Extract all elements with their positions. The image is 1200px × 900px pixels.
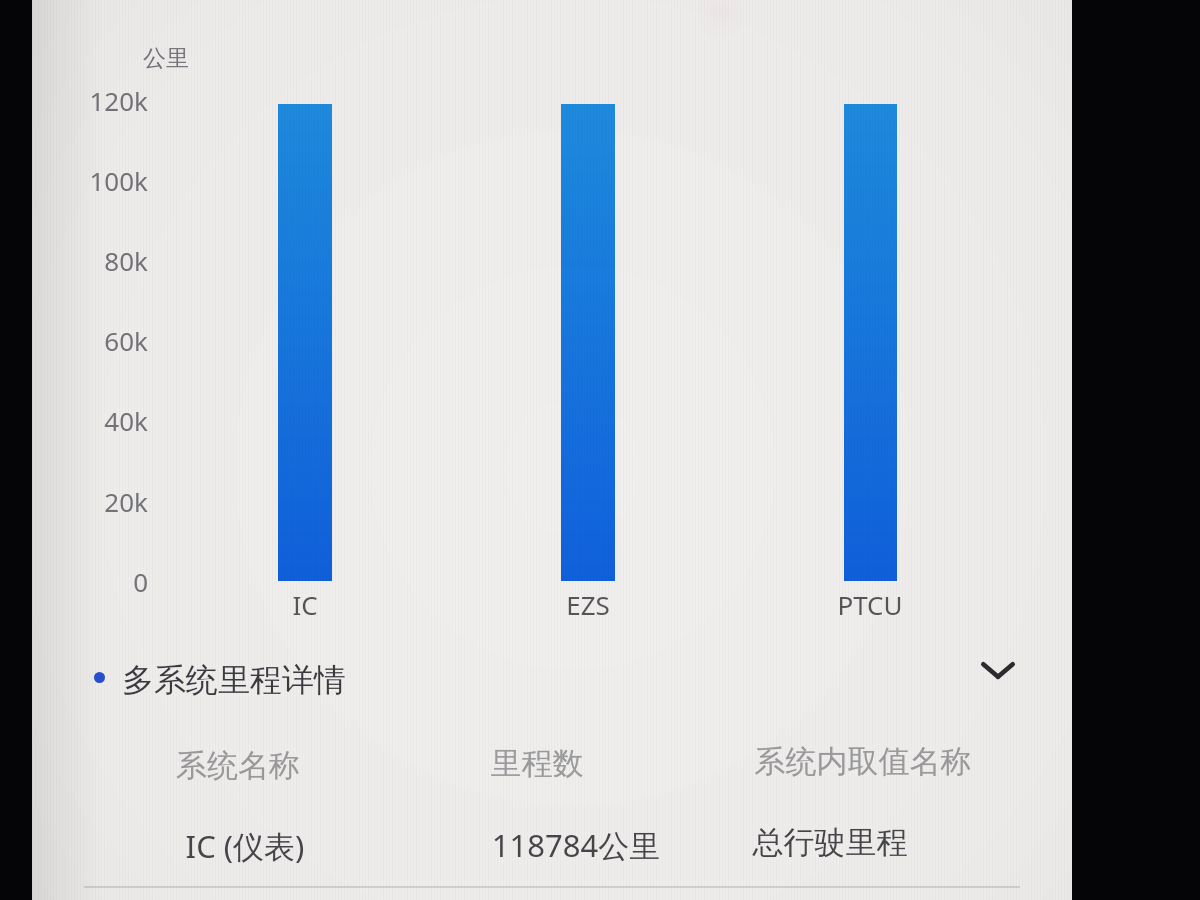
staticText: PTCU <box>750 587 990 622</box>
staticText: 里程数 <box>337 744 737 783</box>
staticText: 60k <box>0 323 148 358</box>
button[interactable]: 展开多系统里程详情 <box>970 642 1026 698</box>
staticText: 公里 <box>143 44 189 73</box>
staticText: 20k <box>0 484 148 519</box>
staticText: 系统名称 <box>38 746 438 785</box>
staticText: 总行驶里程 <box>630 823 1030 862</box>
staticText: 多系统里程详情 <box>122 660 346 700</box>
staticText: 100k <box>0 163 148 198</box>
staticText: IC (仪表) <box>45 825 445 867</box>
button[interactable]: 多系统里程详情 <box>32 645 1072 707</box>
staticText: 0 <box>0 564 148 599</box>
staticText: 40k <box>0 403 148 438</box>
staticText: 系统内取值名称 <box>643 742 1083 781</box>
staticText: EZS <box>468 587 708 622</box>
staticText: IC <box>185 587 425 622</box>
staticText: 120k <box>0 83 148 118</box>
button[interactable] <box>84 800 1020 888</box>
staticText: 80k <box>0 243 148 278</box>
staticText: 118784公里 <box>376 824 776 866</box>
